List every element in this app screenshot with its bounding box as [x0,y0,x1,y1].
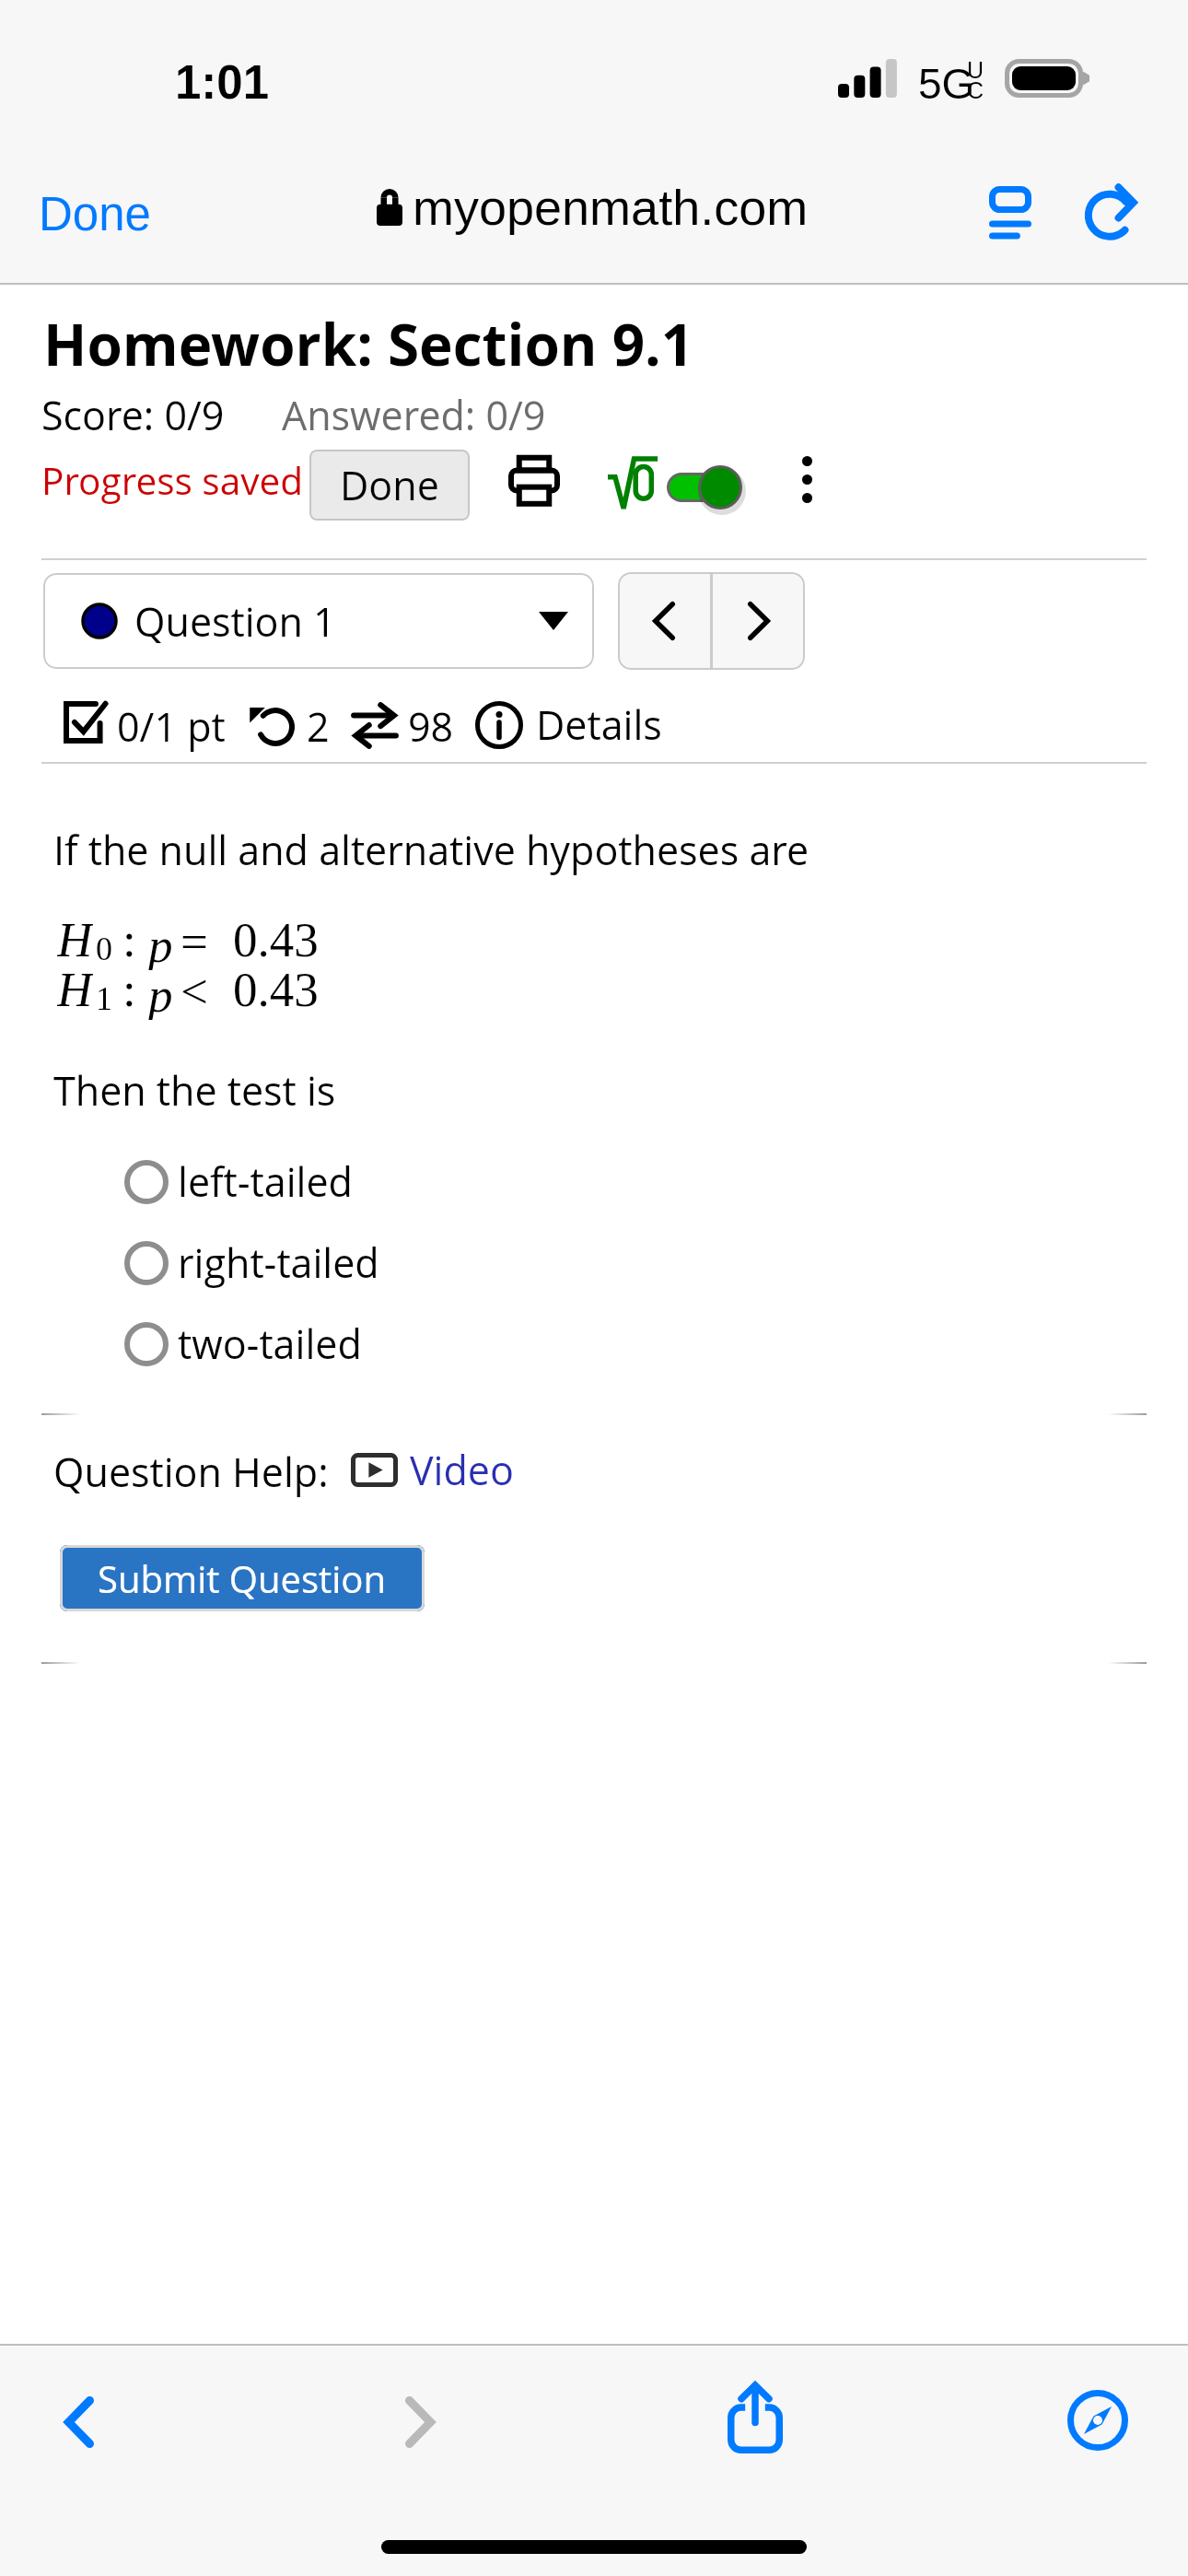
staticText: Homework: Section 9.1 [43,305,694,382]
staticText: left-tailed [178,1154,353,1209]
button[interactable]: right-tailed [119,1230,385,1295]
staticText: Details [536,697,662,752]
staticText: < [181,965,208,1016]
button[interactable]: Toggle math input [667,465,742,509]
staticText: p [148,968,173,1020]
button[interactable]: Video [347,1439,518,1501]
staticText: Video [410,1443,514,1497]
staticText: Answered: 0/9 [282,388,546,442]
button[interactable]: Reader view [966,168,1054,256]
button[interactable]: Done [24,179,166,250]
button[interactable]: Submit Question [60,1545,425,1611]
button[interactable]: More options [770,442,844,516]
staticText: 1:01 [175,56,270,109]
staticText: two-tailed [178,1317,362,1371]
button[interactable]: Question 1 [43,573,594,669]
staticText: Done [340,458,439,512]
button[interactable]: two-tailed [119,1311,367,1376]
staticText: 0.43 [233,963,319,1014]
button[interactable]: Tabs [1042,2365,1153,2476]
staticText: Then the test is [53,1063,336,1118]
button[interactable]: Previous question [618,572,710,670]
staticText: H [57,913,93,965]
staticText: 0.43 [233,913,319,965]
staticText: U [967,57,984,83]
staticText: = [181,915,208,966]
staticText: H [57,963,93,1014]
staticText: : [122,963,136,1014]
button[interactable]: Back [24,2367,134,2477]
staticText: 98 [408,699,454,754]
staticText: 2 [307,699,330,754]
button[interactable]: Print [495,441,573,519]
staticText: myopenmath.com [413,180,809,235]
button[interactable]: left-tailed [119,1149,358,1214]
button[interactable]: Details [472,694,666,755]
staticText: p [148,919,173,970]
staticText: Progress saved [41,455,304,506]
staticText: : [122,913,136,965]
button[interactable]: myopenmath.com [367,172,818,242]
staticText: Score: 0/9 [41,388,225,442]
staticText: 0 [96,931,112,967]
staticText: 0/1 pt [117,699,226,754]
staticText: Question Help: [53,1445,329,1499]
staticText: 1 [96,980,112,1017]
staticText: Done [39,188,151,240]
staticText: right-tailed [178,1235,379,1290]
button[interactable]: Forward [365,2367,475,2477]
button[interactable]: Reload [1070,164,1159,252]
button[interactable]: Done [309,450,470,521]
staticText: 5G [918,60,975,107]
button[interactable]: Next question [713,572,805,670]
staticText: If the null and alternative hypotheses a… [53,823,809,877]
staticText: Submit Question [98,1553,387,1603]
staticText: Question 1 [134,594,336,649]
button[interactable]: Share [700,2362,810,2473]
staticText: C [967,77,984,103]
